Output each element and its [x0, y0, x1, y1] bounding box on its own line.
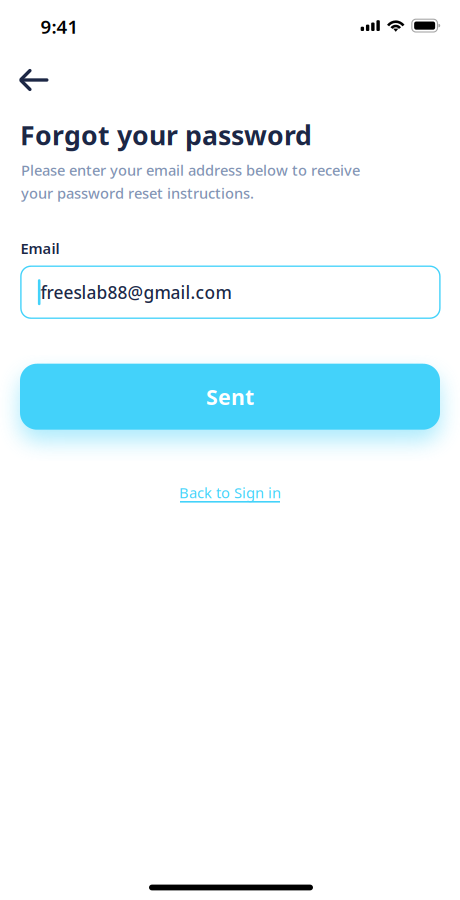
staticText: Please enter your email address below to…	[21, 160, 360, 180]
staticText: Forgot your password	[20, 117, 312, 152]
staticText: Sent	[206, 382, 254, 411]
staticText: freeslab88@gmail.com	[40, 281, 231, 304]
staticText: Back to Sign in	[179, 483, 281, 502]
button[interactable]: freeslab88@gmail.com	[21, 266, 440, 318]
staticText: Email	[20, 239, 59, 258]
button[interactable]: Sent	[20, 364, 440, 430]
button[interactable]: Back to Sign in	[170, 483, 290, 513]
button[interactable]: Back	[0, 55, 81, 105]
staticText: 9:41	[40, 14, 78, 39]
staticText: your password reset instructions.	[21, 183, 254, 203]
